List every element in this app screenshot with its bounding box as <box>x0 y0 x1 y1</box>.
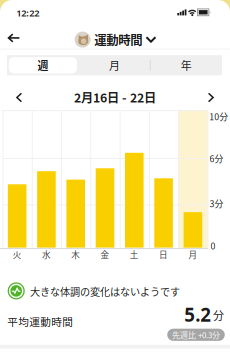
staticText: 大きな体調の変化はないようです <box>30 284 180 299</box>
button[interactable]: 前の週 <box>16 92 22 102</box>
staticText: 6分 <box>210 152 224 165</box>
staticText: 月 <box>188 248 197 261</box>
button[interactable]: 次の週 <box>208 92 214 102</box>
button[interactable]: 月 <box>80 57 149 73</box>
staticText: 水 <box>42 248 51 261</box>
staticText: 木 <box>71 248 80 261</box>
button[interactable]: 運動時間メニュー <box>75 31 156 49</box>
staticText: 運動時間 <box>94 31 142 49</box>
staticText: 5.2 <box>184 302 211 327</box>
staticText: 火 <box>13 248 22 261</box>
staticText: 10分 <box>209 110 228 123</box>
button[interactable]: 週 <box>9 57 77 73</box>
staticText: 月 <box>109 57 120 73</box>
staticText: 12:22 <box>16 7 39 19</box>
staticText: 0 <box>210 239 215 252</box>
staticText: 3分 <box>210 197 224 210</box>
staticText: 先週比 +0.3分 <box>172 329 220 341</box>
staticText: 土 <box>130 248 139 261</box>
staticText: 2月16日 - 22日 <box>74 88 156 106</box>
button[interactable]: 年 <box>152 57 220 73</box>
staticText: 週 <box>37 57 48 73</box>
staticText: 分 <box>213 307 224 323</box>
staticText: 日 <box>159 248 168 261</box>
staticText: 金 <box>100 248 109 261</box>
staticText: 平均運動時間 <box>7 314 73 329</box>
button[interactable]: Back <box>8 34 20 43</box>
staticText: 年 <box>181 57 192 73</box>
